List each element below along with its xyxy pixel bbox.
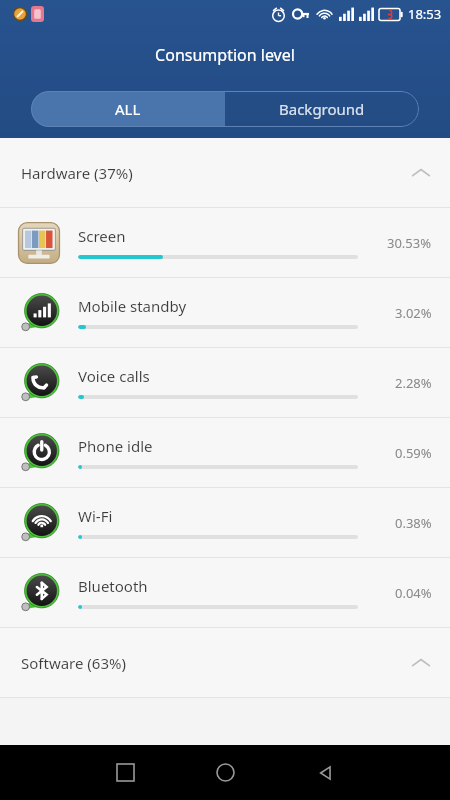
staticText: 0.38% [395,514,432,532]
staticText: Bluetooth [78,576,148,596]
button[interactable]: Hardware (37%) [0,138,450,207]
button[interactable]: Recent apps [75,745,175,800]
staticText: 18:53 [408,5,442,23]
other: Screen [16,220,62,266]
staticText: ALL [115,99,141,119]
button[interactable]: Software (63%) [0,628,450,697]
button[interactable]: Background [225,91,419,127]
other: Mobile standby [16,290,62,336]
button[interactable]: Home [175,745,275,800]
staticText: Hardware (37%) [21,163,133,183]
button[interactable]: Mobile standby [0,278,450,347]
button[interactable]: Bluetooth [0,558,450,627]
staticText: Voice calls [78,366,150,386]
other: Wi-Fi [16,500,62,546]
button[interactable]: Wi-Fi [0,488,450,557]
other: Voice calls [16,360,62,406]
staticText: Phone idle [78,436,153,456]
staticText: Software (63%) [21,653,126,673]
button[interactable]: Screen [0,208,450,277]
button[interactable]: Back [275,745,375,800]
staticText: 3.02% [395,304,432,322]
staticText: 30.53% [387,234,432,252]
staticText: Screen [78,226,126,246]
staticText: 2.28% [395,374,432,392]
button[interactable]: Voice calls [0,348,450,417]
other: Bluetooth [16,570,62,616]
staticText: Mobile standby [78,296,187,316]
staticText: 0.04% [395,584,432,602]
button[interactable]: ALL [31,91,225,127]
button[interactable]: Phone idle [0,418,450,487]
other: Phone idle [16,430,62,476]
staticText: Wi-Fi [78,506,113,526]
staticText: Background [279,99,365,119]
staticText: 0.59% [395,444,432,462]
staticText: Consumption level [0,44,450,66]
